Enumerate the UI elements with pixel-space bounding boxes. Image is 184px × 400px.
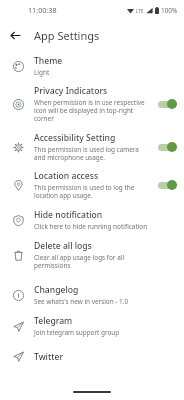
button[interactable]: Changelog bbox=[0, 270, 184, 306]
staticText: Changelog bbox=[34, 284, 79, 296]
button[interactable]: Toggle Accessibility Setting bbox=[156, 140, 178, 154]
staticText: 11:00:38 bbox=[28, 5, 57, 15]
staticText: Accessibility Setting bbox=[34, 132, 116, 144]
staticText: Location access bbox=[34, 170, 99, 182]
staticText: Theme bbox=[34, 55, 63, 67]
staticText: Light bbox=[34, 68, 50, 77]
button[interactable]: Telegram bbox=[0, 306, 184, 337]
staticText: Twitter bbox=[34, 351, 64, 363]
staticText: 100% bbox=[161, 6, 178, 15]
staticText: App Settings bbox=[34, 28, 100, 43]
staticText: This permission is used log camera and m… bbox=[34, 145, 152, 162]
button[interactable]: Back bbox=[6, 26, 24, 44]
staticText: Delete all logs bbox=[34, 240, 92, 252]
staticText: Clear all app usage logs for all permiss… bbox=[34, 253, 156, 270]
button[interactable]: Toggle Privacy Indicators bbox=[156, 97, 178, 111]
staticText: See whats's new in version - 1.0 bbox=[34, 297, 129, 306]
button[interactable]: Delete all logs bbox=[0, 231, 184, 270]
staticText: LTE bbox=[136, 8, 144, 14]
staticText: Telegram bbox=[34, 315, 73, 327]
staticText: This permission is used to log the locat… bbox=[34, 183, 152, 200]
button[interactable]: Twitter bbox=[0, 337, 184, 367]
button[interactable]: Toggle Location access bbox=[156, 178, 178, 192]
button[interactable]: Hide notification bbox=[0, 200, 184, 231]
button[interactable]: Location access bbox=[0, 162, 184, 200]
button[interactable]: Theme bbox=[0, 50, 184, 77]
staticText: Join telegram support group bbox=[34, 328, 120, 337]
staticText: Privacy Indicators bbox=[34, 85, 108, 97]
staticText: Click here to hide running notification bbox=[34, 222, 148, 231]
staticText: When permission is in use respective ico… bbox=[34, 98, 152, 123]
staticText: Hide notification bbox=[34, 209, 103, 221]
button[interactable]: Accessibility Setting bbox=[0, 123, 184, 162]
button[interactable]: Privacy Indicators bbox=[0, 77, 184, 123]
